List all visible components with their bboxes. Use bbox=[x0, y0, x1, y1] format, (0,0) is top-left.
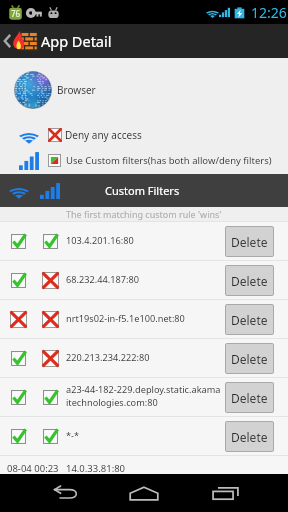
staticText: nrt19s02-in-f5.1e100.net:80 bbox=[66, 312, 185, 325]
button[interactable]: nrt19s02-in-f5.1e100.net:80 bbox=[0, 300, 288, 338]
staticText: Delete bbox=[231, 390, 268, 406]
staticText: Use Custom filters(has both allow/deny f… bbox=[66, 154, 272, 167]
button[interactable]: Use Custom filters(has both allow/deny f… bbox=[0, 148, 288, 173]
button[interactable]: a23-44-182-229.deploy.static.akamaitechn… bbox=[0, 378, 288, 416]
button[interactable]: Browser bbox=[0, 58, 288, 122]
staticText: Deny any access bbox=[65, 128, 142, 142]
button[interactable]: Back bbox=[0, 24, 288, 58]
button[interactable]: 68.232.44.187:80 bbox=[0, 261, 288, 299]
button[interactable]: Delete bbox=[225, 304, 274, 335]
staticText: Delete bbox=[231, 312, 268, 328]
button[interactable]: Back bbox=[36, 474, 92, 512]
staticText: 103.4.201.16:80 bbox=[66, 234, 134, 247]
button[interactable]: Delete bbox=[225, 226, 274, 257]
staticText: 08-04 00:23 14.0.33.81:80 bbox=[7, 462, 126, 475]
staticText: 12:26 bbox=[251, 3, 287, 22]
staticText: *-* bbox=[66, 429, 80, 442]
button[interactable]: Deny any access bbox=[0, 122, 288, 148]
staticText: Browser bbox=[57, 83, 96, 97]
button[interactable]: 220.213.234.222:80 bbox=[0, 339, 288, 377]
button[interactable]: 103.4.201.16:80 bbox=[0, 222, 288, 260]
staticText: Custom Filters bbox=[105, 183, 180, 198]
button[interactable]: Delete bbox=[225, 421, 274, 452]
button[interactable]: Delete bbox=[225, 343, 274, 374]
button[interactable]: Delete bbox=[225, 382, 274, 413]
staticText: The first matching custom rule 'wins' bbox=[66, 208, 222, 220]
button[interactable]: Recent apps bbox=[197, 474, 253, 512]
staticText: a23-44-182-229.deploy.static.akamaitechn… bbox=[66, 383, 222, 409]
button[interactable]: Delete bbox=[225, 265, 274, 296]
staticText: Delete bbox=[231, 429, 268, 445]
staticText: 220.213.234.222:80 bbox=[66, 351, 150, 364]
other: Back bbox=[2, 32, 12, 50]
staticText: Delete bbox=[231, 234, 268, 250]
button[interactable]: *-* bbox=[0, 417, 288, 455]
staticText: 68.232.44.187:80 bbox=[66, 273, 139, 286]
staticText: Delete bbox=[231, 273, 268, 289]
staticText: Delete bbox=[231, 351, 268, 367]
button[interactable]: Home bbox=[116, 474, 172, 512]
staticText: 76 bbox=[11, 8, 21, 19]
staticText: App Detail bbox=[41, 31, 112, 51]
